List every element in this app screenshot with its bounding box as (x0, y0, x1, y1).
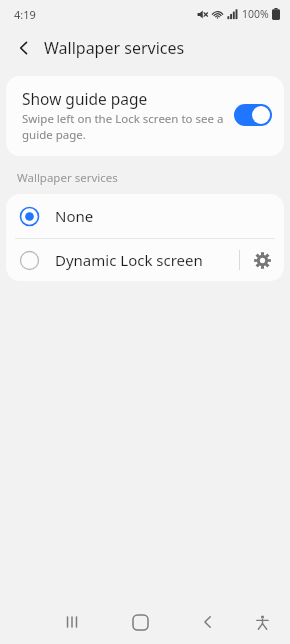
staticText: Swipe left on the Lock screen to see a g… (22, 111, 224, 142)
staticText: Wallpaper services (17, 170, 118, 186)
staticText: None (55, 206, 94, 226)
staticText: Show guide page (22, 88, 148, 109)
button[interactable]: Show guide page (6, 76, 284, 156)
button[interactable]: Dynamic Lock screen settings (240, 239, 284, 281)
button[interactable]: Home (120, 602, 160, 642)
button[interactable]: Recent apps (52, 602, 92, 642)
button[interactable]: Back (8, 32, 40, 64)
staticText: Wallpaper services (44, 37, 185, 59)
button[interactable]: Back (188, 602, 228, 642)
button[interactable]: Show guide page toggle (234, 104, 272, 126)
staticText: 4:19 (14, 7, 36, 22)
staticText: Dynamic Lock screen (55, 250, 203, 270)
button[interactable]: Dynamic Lock screen (6, 239, 239, 281)
button[interactable]: Accessibility (242, 602, 282, 642)
button[interactable]: None (6, 194, 284, 238)
staticText: 100% (242, 7, 269, 21)
